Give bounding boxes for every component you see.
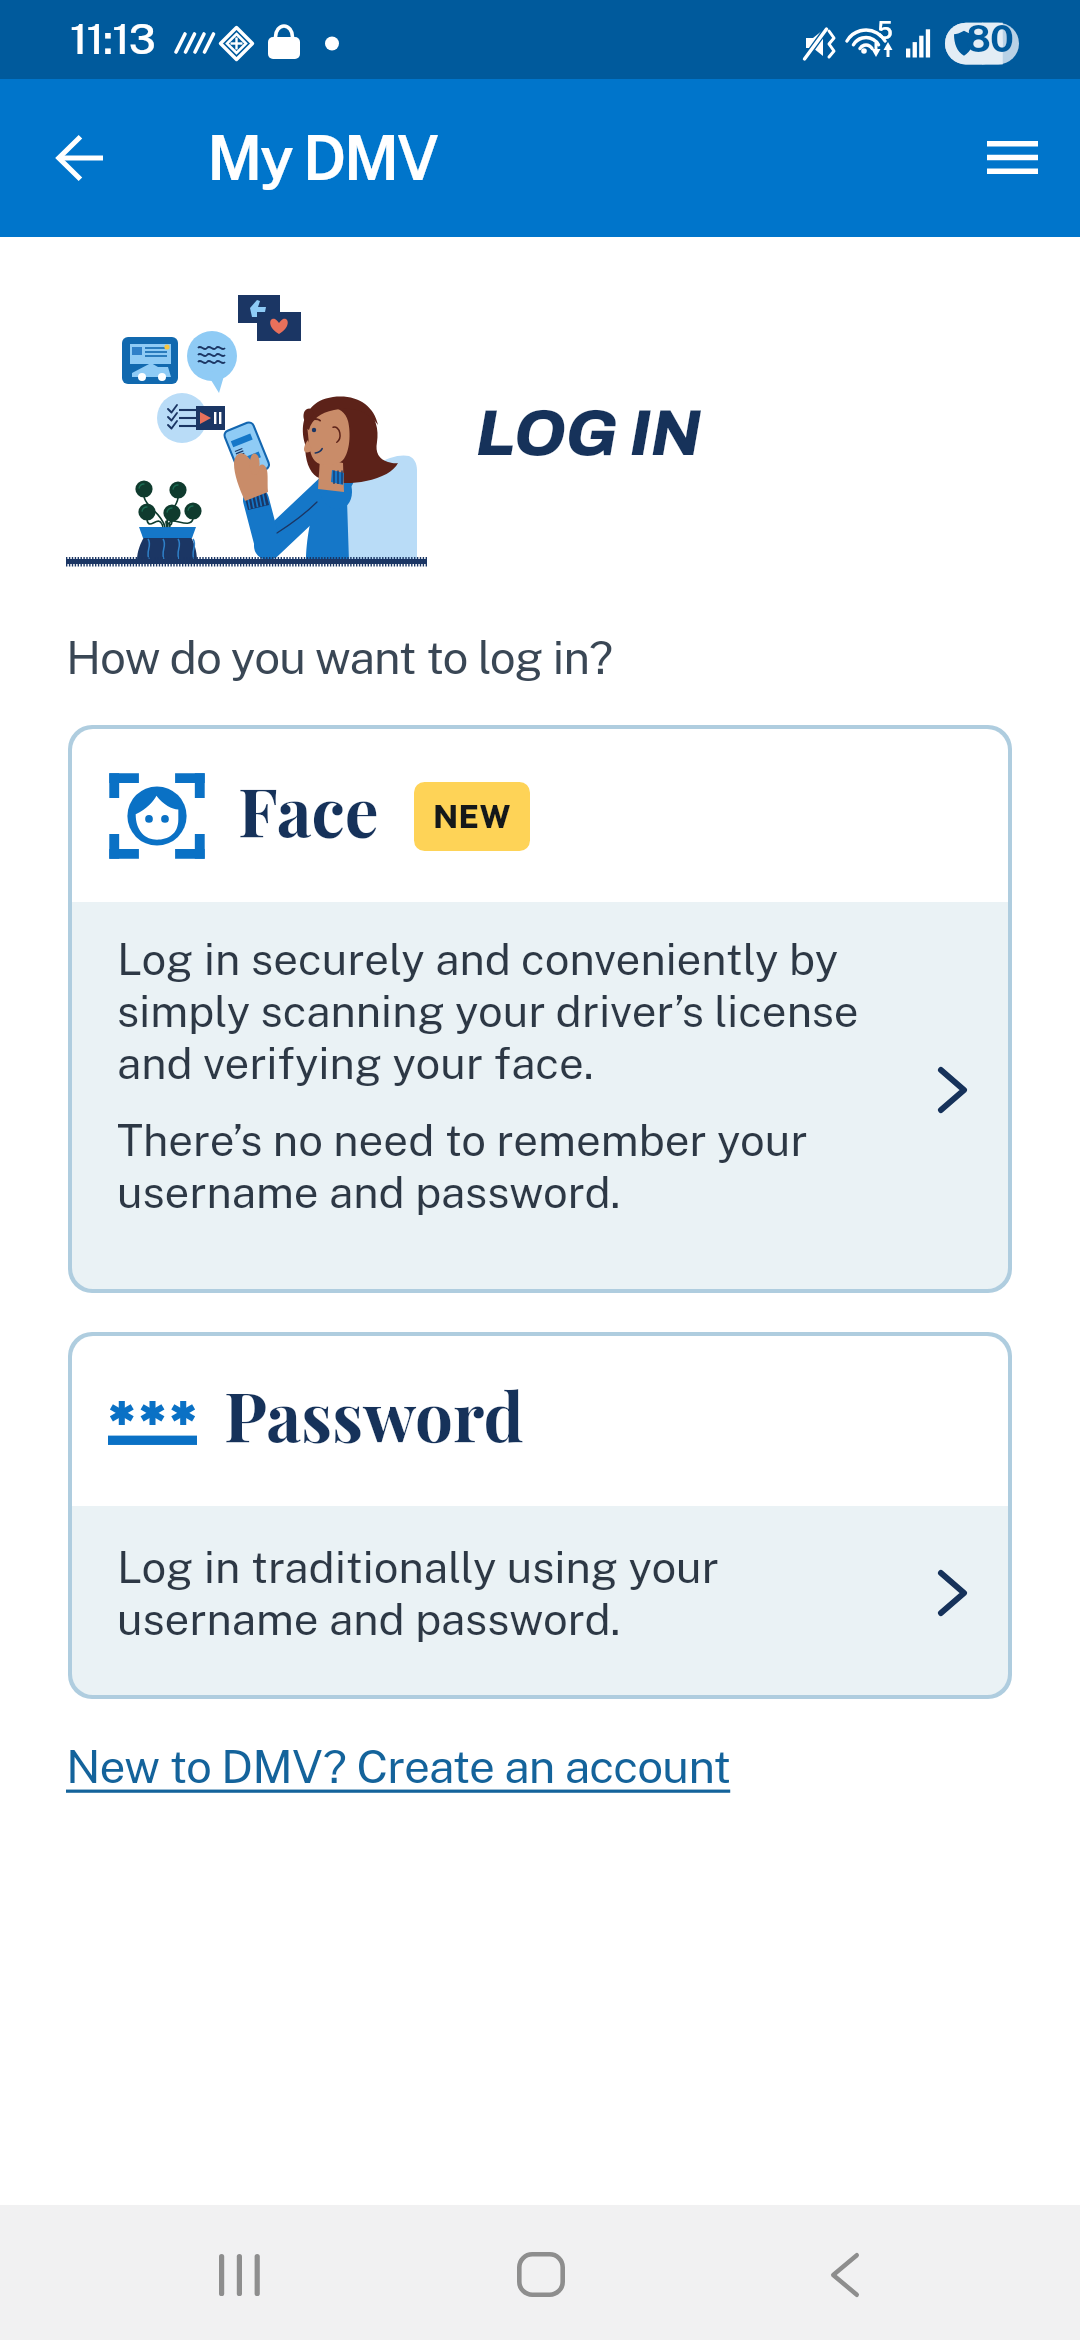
staticText: 11:13 (70, 14, 155, 64)
staticText: Log in securely and conveniently by simp… (117, 933, 920, 1089)
button[interactable]: New to DMV? Create an account (66, 1739, 731, 1793)
staticText: LOG IN (476, 399, 702, 469)
staticText: My DMV (207, 122, 437, 194)
staticText: 80 (966, 17, 1014, 61)
staticText: Log in traditionally using your username… (117, 1541, 920, 1645)
staticText: How do you want to log in? (66, 630, 613, 684)
button[interactable]: Menu (987, 141, 1038, 175)
staticText: Face (238, 764, 379, 854)
staticText: There’s no need to remember your usernam… (117, 1114, 920, 1218)
staticText: 5 (877, 16, 893, 44)
button[interactable]: Recent apps (188, 2205, 290, 2340)
staticText: NEW (433, 798, 511, 835)
button[interactable]: Face (68, 725, 1012, 1293)
staticText: Password (224, 1369, 524, 1459)
button[interactable]: Home (489, 2205, 591, 2340)
button[interactable]: Back (56, 135, 103, 181)
button[interactable]: Back (794, 2205, 896, 2340)
button[interactable]: Password (68, 1332, 1012, 1699)
